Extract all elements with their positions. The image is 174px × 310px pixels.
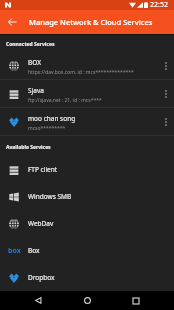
button[interactable]: Recents bbox=[124, 291, 148, 310]
staticText: box bbox=[8, 246, 21, 256]
button[interactable]: moo chan song bbox=[0, 108, 174, 136]
staticText: https://dav.box.com, id : mcs***********… bbox=[28, 69, 134, 76]
staticText: Manage Network & Cloud Services bbox=[29, 17, 153, 27]
staticText: Available Services bbox=[6, 144, 51, 151]
button[interactable]: WebDav bbox=[0, 210, 174, 237]
staticText: mcso********* bbox=[28, 125, 66, 132]
button[interactable]: Home bbox=[75, 291, 99, 310]
staticText: 22:52 bbox=[150, 0, 168, 10]
button[interactable]: Dropbox bbox=[0, 264, 174, 291]
staticText: ftp://sjava.net : 21, id : mcs**** bbox=[28, 97, 102, 104]
staticText: BOX bbox=[28, 58, 41, 67]
button[interactable]: FTP client bbox=[0, 156, 174, 183]
button[interactable]: Windows SMB bbox=[0, 183, 174, 210]
staticText: Dropbox bbox=[28, 273, 55, 282]
staticText: Windows SMB bbox=[28, 192, 72, 201]
button[interactable]: More options bbox=[158, 108, 174, 136]
button[interactable]: box bbox=[0, 237, 174, 264]
button[interactable]: Back bbox=[26, 291, 50, 310]
staticText: Box bbox=[28, 246, 40, 255]
staticText: FTP client bbox=[28, 165, 58, 174]
staticText: Connected Services bbox=[6, 41, 55, 48]
button[interactable]: BOX bbox=[0, 52, 174, 80]
staticText: WebDav bbox=[28, 219, 54, 228]
button[interactable]: More options bbox=[158, 52, 174, 80]
button[interactable]: Back bbox=[0, 10, 24, 34]
staticText: Sjava bbox=[28, 86, 44, 95]
button[interactable]: More options bbox=[158, 80, 174, 108]
button[interactable]: Sjava bbox=[0, 80, 174, 108]
staticText: moo chan song bbox=[28, 114, 76, 123]
